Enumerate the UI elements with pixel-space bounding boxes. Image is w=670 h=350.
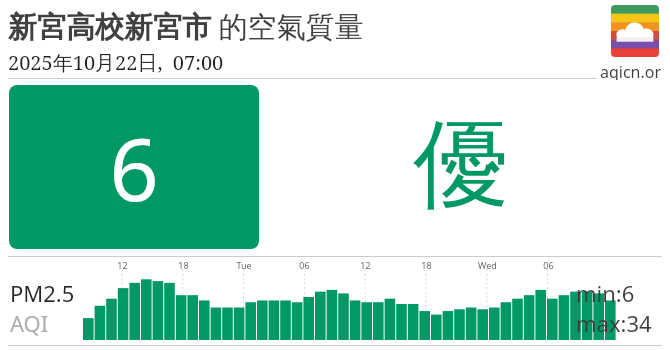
staticText: 12 (117, 259, 128, 271)
staticText: 18 (178, 259, 189, 271)
staticText: 06 (543, 259, 554, 271)
staticText: aqicn.org (600, 61, 670, 80)
staticText: 的空氣質量 (211, 6, 364, 46)
staticText: 6 (109, 109, 159, 226)
staticText: 新宮高校新宮市 (8, 9, 211, 46)
staticText: 2025年10月22日, 07:00 (8, 49, 224, 76)
staticText: max:34 (576, 308, 652, 338)
staticText: AQI (10, 308, 49, 338)
staticText: PM2.5 (10, 278, 75, 308)
staticText: Tue (236, 259, 252, 271)
staticText: 12 (360, 259, 371, 271)
staticText: 優 (413, 105, 509, 226)
button[interactable]: aqicn.org logo (611, 5, 659, 57)
button[interactable]: 6 (9, 85, 259, 249)
staticText: 18 (421, 259, 432, 271)
staticText: 06 (299, 259, 310, 271)
staticText: Wed (478, 259, 497, 271)
staticText: min:6 (576, 278, 635, 308)
